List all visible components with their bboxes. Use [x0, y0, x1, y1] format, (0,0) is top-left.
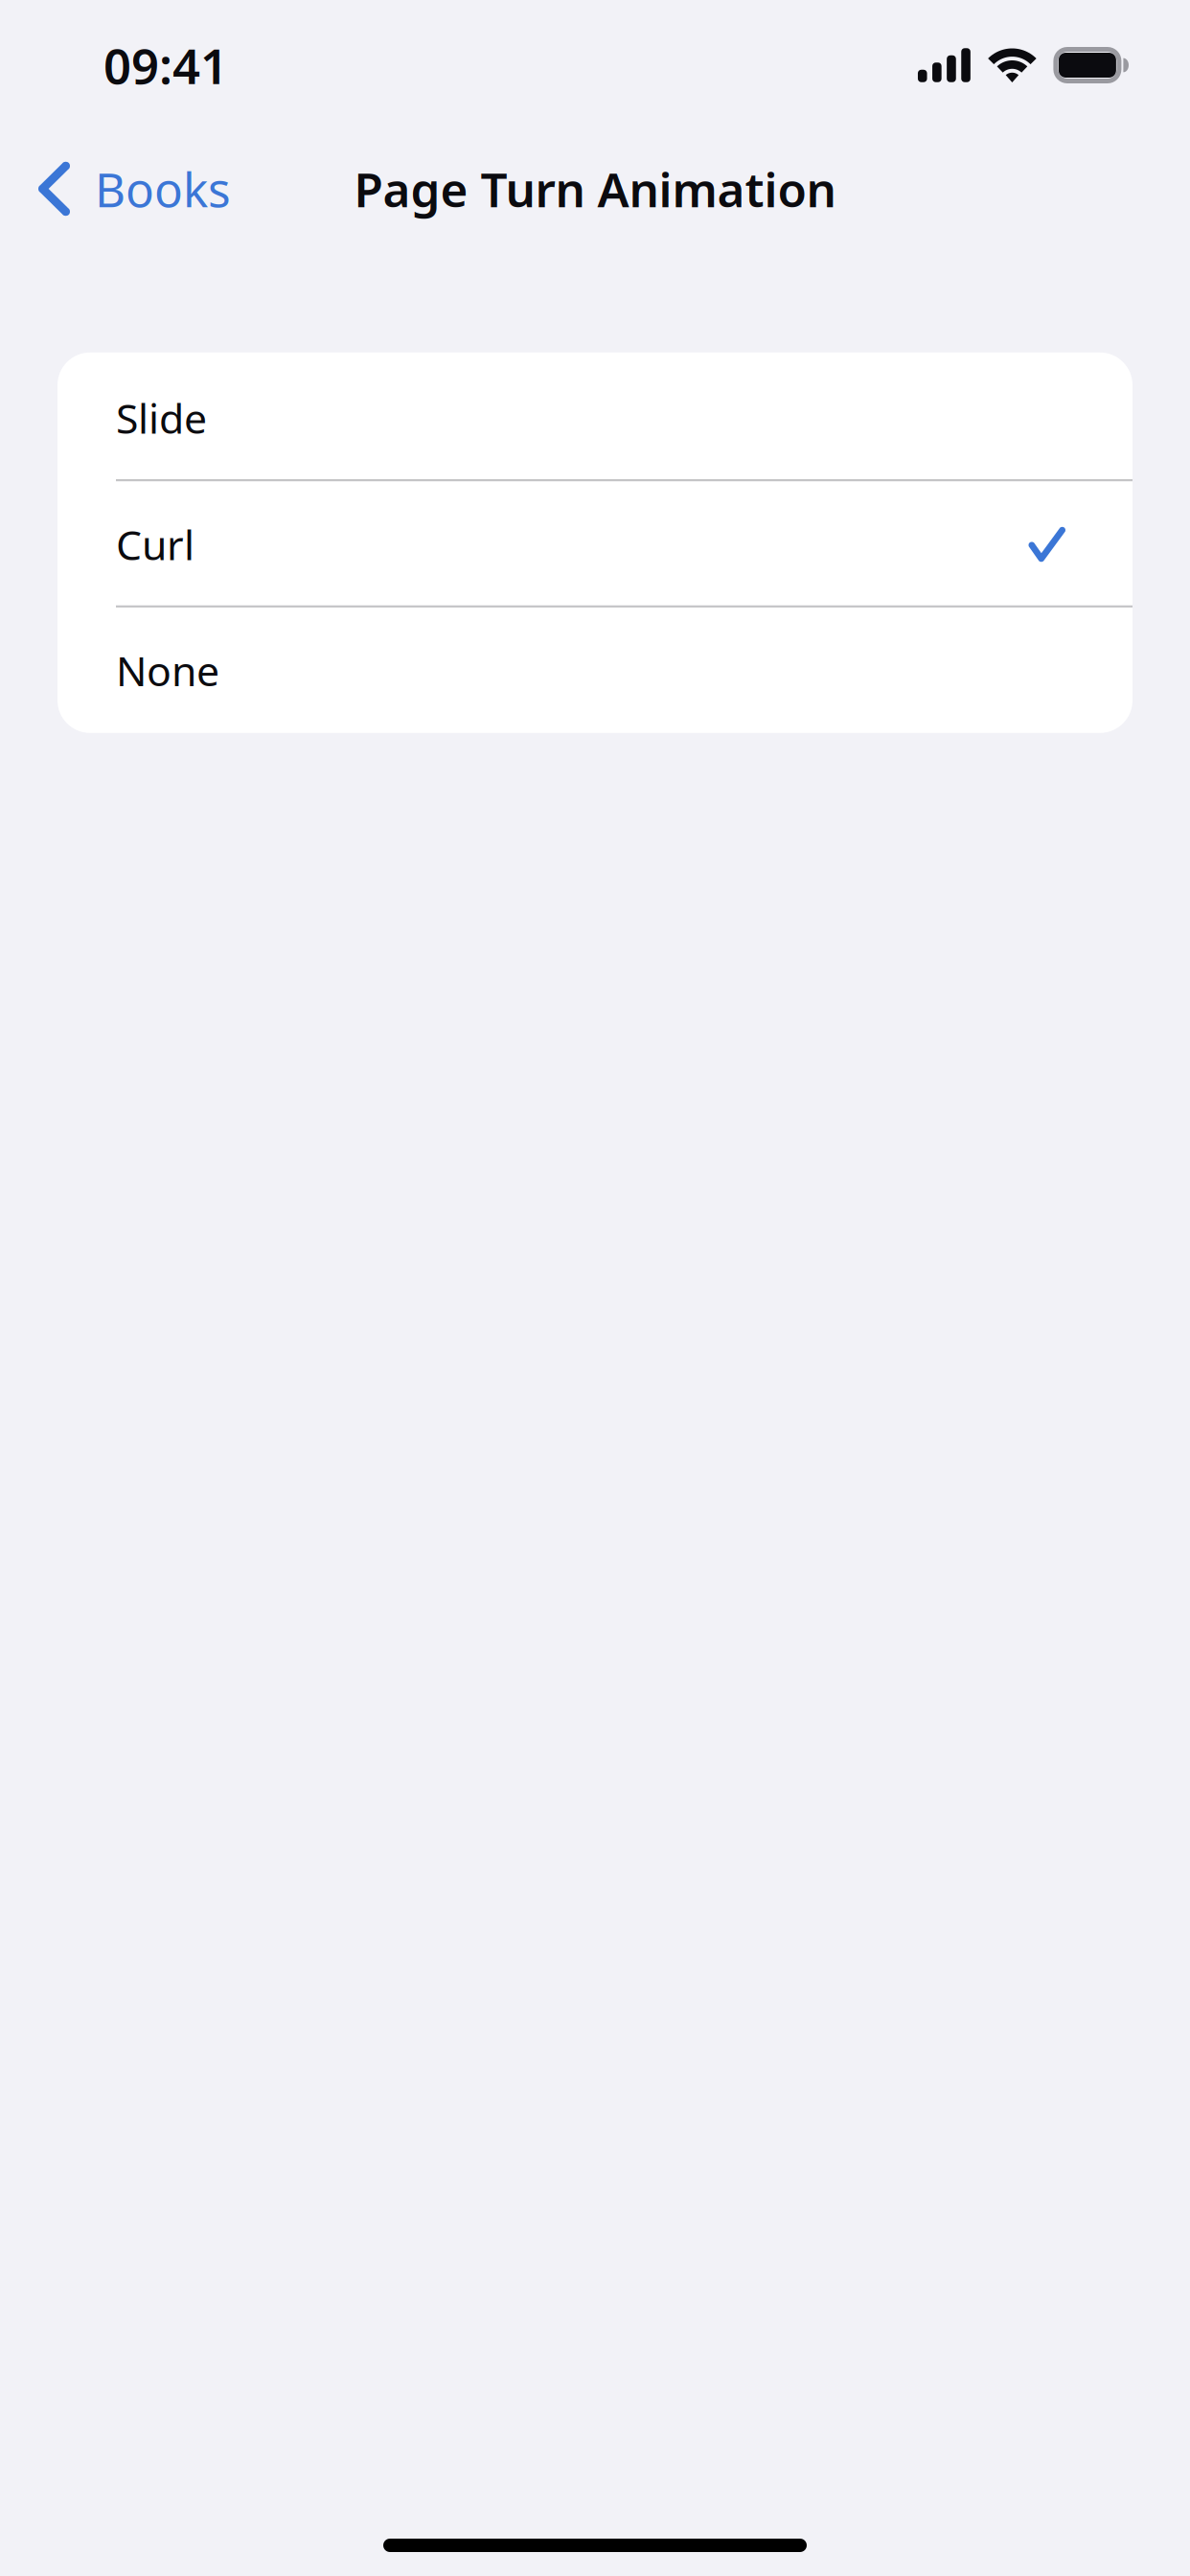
button[interactable]: Slide [57, 354, 1133, 481]
button[interactable]: None [57, 607, 1133, 733]
staticText: Books [95, 157, 231, 220]
staticText: Curl [116, 517, 195, 572]
staticText: 09:41 [103, 33, 228, 97]
button[interactable]: Curl [57, 481, 1133, 607]
staticText: None [116, 643, 219, 697]
staticText: Page Turn Animation [354, 157, 836, 220]
staticText: Slide [116, 391, 207, 445]
button[interactable]: Books [0, 128, 254, 249]
